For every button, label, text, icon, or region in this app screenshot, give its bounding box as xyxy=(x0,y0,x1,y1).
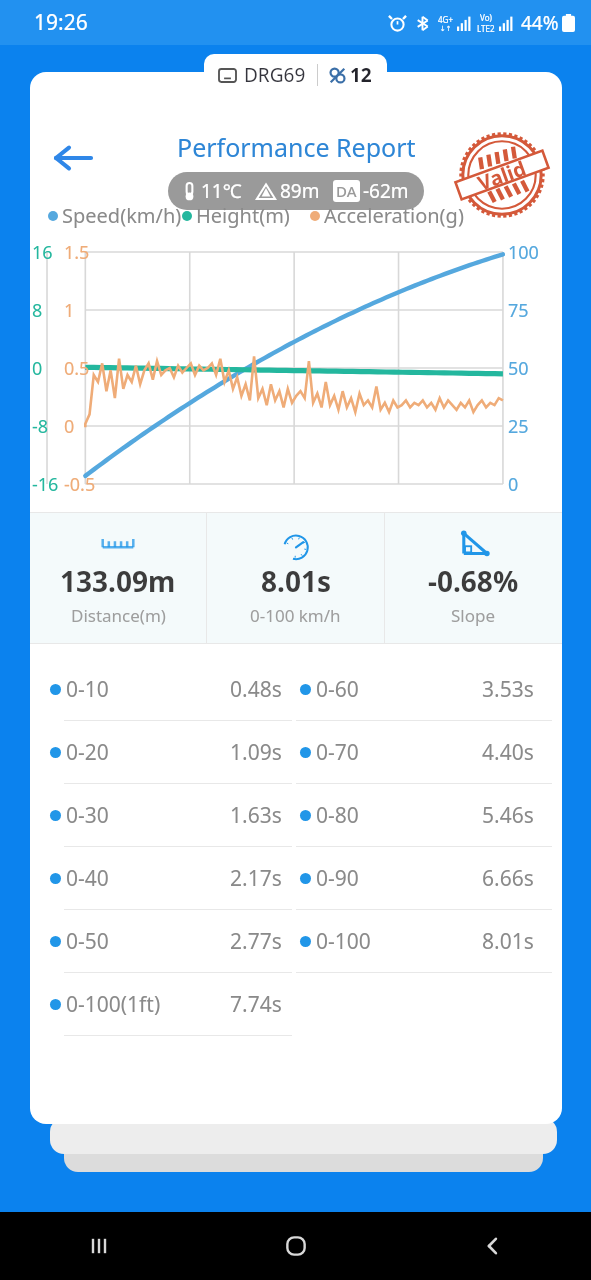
staticText: 12 xyxy=(350,62,372,88)
staticText: Acceleration(g) xyxy=(324,202,464,229)
staticText: 0-60 xyxy=(316,675,359,704)
staticText: 16 xyxy=(32,240,53,265)
staticText: 0-100 km/h xyxy=(250,604,341,627)
button[interactable]: 0-100(1ft) xyxy=(30,973,562,1036)
staticText: 89m xyxy=(280,178,320,204)
staticText: 0-40 xyxy=(66,864,109,893)
staticText: DA xyxy=(336,181,357,201)
staticText: 8.01s xyxy=(261,562,331,600)
staticText: Distance(m) xyxy=(71,604,166,627)
staticText: Performance Report xyxy=(177,130,416,164)
staticText: 1.09s xyxy=(230,738,282,767)
button[interactable]: Recents xyxy=(0,1212,197,1280)
staticText: 0-20 xyxy=(66,738,109,767)
staticText: 75 xyxy=(508,298,529,323)
button[interactable]: Back xyxy=(44,130,100,186)
staticText: 1.63s xyxy=(230,801,282,830)
button[interactable]: DRG69 xyxy=(204,54,387,96)
staticText: 19:26 xyxy=(34,8,88,37)
staticText: 7.74s xyxy=(230,990,282,1019)
staticText: Valid xyxy=(474,154,530,197)
staticText: Slope xyxy=(451,604,496,627)
button[interactable]: 0-50 xyxy=(30,910,562,973)
staticText: 4.40s xyxy=(482,738,534,767)
staticText: LTE2 xyxy=(477,23,495,34)
staticText: -8 xyxy=(32,414,49,439)
staticText: 2.77s xyxy=(230,927,282,956)
staticText: 50 xyxy=(508,356,529,381)
button[interactable]: 8.01s xyxy=(207,512,384,644)
staticText: Speed(km/h) xyxy=(62,202,182,229)
staticText: -62m xyxy=(363,178,409,204)
staticText: Height(m) xyxy=(196,202,290,229)
staticText: 0-70 xyxy=(316,738,359,767)
button[interactable]: -0.68% xyxy=(385,512,562,644)
button[interactable]: 133.09m xyxy=(30,512,206,644)
staticText: 0 xyxy=(64,414,75,439)
staticText: 0.5 xyxy=(64,356,90,381)
staticText: 8 xyxy=(32,298,43,323)
staticText: 4G+ xyxy=(438,14,453,25)
staticText: DRG69 xyxy=(244,62,306,88)
staticText: 0 xyxy=(508,472,519,497)
staticText: 100 xyxy=(508,240,539,265)
staticText: 133.09m xyxy=(60,562,176,600)
staticText: -0.68% xyxy=(428,562,519,600)
staticText: 0-100(1ft) xyxy=(66,990,161,1019)
staticText: 0 xyxy=(32,356,43,381)
staticText: Vo) xyxy=(480,12,492,23)
button[interactable]: Home xyxy=(197,1212,394,1280)
button[interactable]: 0-30 xyxy=(30,784,562,847)
button[interactable]: Back xyxy=(394,1212,591,1280)
staticText: -0.5 xyxy=(64,472,96,497)
staticText: 0-30 xyxy=(66,801,109,830)
staticText: -16 xyxy=(32,472,59,497)
button[interactable]: 0-40 xyxy=(30,847,562,910)
staticText: 5.46s xyxy=(482,801,534,830)
button[interactable]: 0-10 xyxy=(30,658,562,721)
staticText: 2.17s xyxy=(230,864,282,893)
staticText: 0-80 xyxy=(316,801,359,830)
staticText: 3.53s xyxy=(482,675,534,704)
staticText: 6.66s xyxy=(482,864,534,893)
staticText: ↓↑ xyxy=(440,25,452,33)
staticText: 1 xyxy=(64,298,75,323)
staticText: 0-50 xyxy=(66,927,109,956)
staticText: 0-90 xyxy=(316,864,359,893)
staticText: 11℃ xyxy=(201,178,242,204)
staticText: 0-100 xyxy=(316,927,371,956)
button[interactable]: 0-20 xyxy=(30,721,562,784)
staticText: 0.48s xyxy=(230,675,282,704)
staticText: 0-10 xyxy=(66,675,109,704)
staticText: 44% xyxy=(521,10,559,36)
staticText: 1.5 xyxy=(64,240,90,265)
staticText: 8.01s xyxy=(482,927,534,956)
staticText: 25 xyxy=(508,414,529,439)
